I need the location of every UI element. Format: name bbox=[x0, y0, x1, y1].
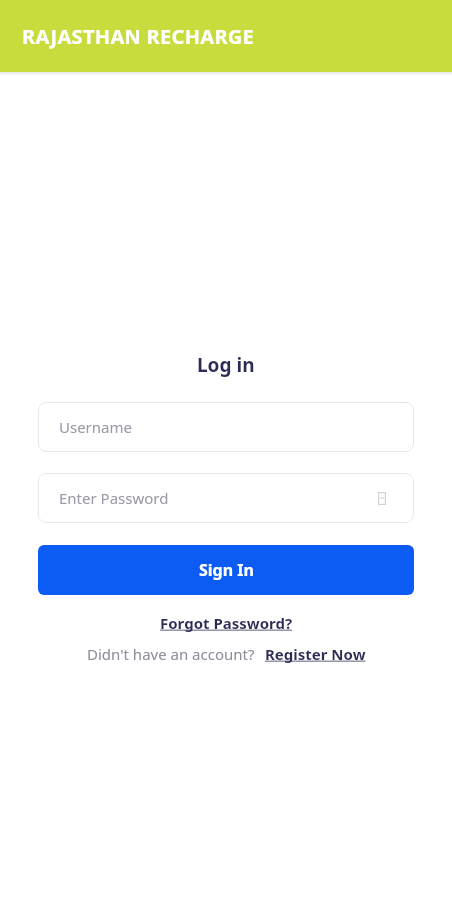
staticText: Log in bbox=[197, 352, 255, 378]
staticText: Username bbox=[59, 417, 132, 437]
staticText: Sign In bbox=[199, 559, 254, 581]
staticText: Forgot Password? bbox=[160, 613, 293, 633]
button[interactable]: Toggle password visibility bbox=[372, 488, 392, 508]
button[interactable]: Username bbox=[38, 402, 414, 452]
button[interactable]: Register Now bbox=[265, 644, 366, 664]
staticText: Register Now bbox=[265, 644, 366, 664]
button[interactable]: Sign In bbox=[38, 545, 414, 595]
staticText: Enter Password bbox=[59, 488, 169, 508]
staticText: Didn't have an account? bbox=[87, 644, 255, 664]
button[interactable]: Forgot Password? bbox=[160, 613, 293, 633]
staticText: RAJASTHAN RECHARGE bbox=[22, 23, 255, 50]
button[interactable]: Enter Password bbox=[38, 473, 414, 523]
